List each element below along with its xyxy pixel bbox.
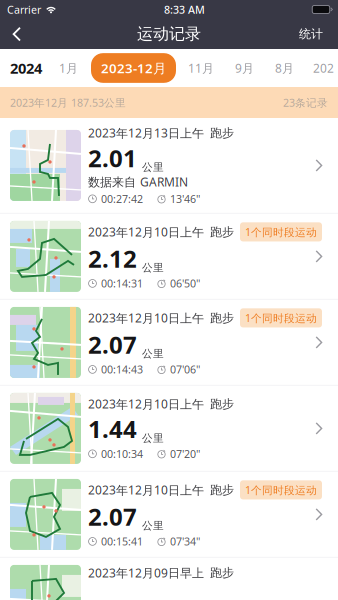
- staticText: 跑步: [210, 396, 234, 411]
- staticText: 运动记录: [137, 24, 201, 44]
- staticText: 00:14:43: [101, 362, 143, 376]
- button[interactable]: 1月: [59, 60, 78, 76]
- button[interactable]: 2023年12月13日上午: [0, 118, 338, 213]
- staticText: 1个同时段运动: [245, 483, 317, 497]
- button[interactable]: 11月: [188, 60, 214, 76]
- button[interactable]: 2023年12月09日早上: [0, 558, 338, 600]
- staticText: 跑步: [210, 224, 234, 239]
- staticText: 00:15:41: [101, 534, 143, 548]
- staticText: 00:27:42: [101, 192, 143, 206]
- staticText: 07'20'': [170, 447, 200, 461]
- button[interactable]: 2023年12月10日上午: [0, 300, 338, 385]
- staticText: 11月: [188, 60, 214, 76]
- staticText: 跑步: [210, 565, 234, 580]
- staticText: 2023年12月09日早上: [88, 565, 204, 581]
- staticText: Carrier: [7, 2, 41, 17]
- staticText: 公里: [142, 347, 164, 360]
- staticText: 8:33 AM: [164, 2, 205, 17]
- staticText: 2.07: [88, 328, 137, 360]
- staticText: 07'06'': [170, 362, 200, 376]
- staticText: 公里: [142, 519, 164, 532]
- staticText: 2023年12月10日上午: [88, 224, 204, 240]
- button[interactable]: 2023年12月10日上午: [0, 214, 338, 299]
- staticText: 2023年12月10日上午: [88, 396, 204, 412]
- staticText: 2024: [10, 58, 42, 78]
- button[interactable]: 2023-12月: [91, 53, 176, 83]
- staticText: 跑步: [210, 310, 234, 325]
- staticText: 1个同时段运动: [245, 225, 317, 239]
- staticText: 2.12: [88, 242, 137, 274]
- button[interactable]: 9月: [235, 60, 254, 76]
- staticText: 00:10:34: [101, 447, 143, 461]
- staticText: 2023年12月13日上午: [88, 125, 204, 141]
- staticText: 跑步: [210, 482, 234, 497]
- staticText: 1个同时段运动: [245, 311, 317, 325]
- button[interactable]: 2023年12月10日上午: [0, 386, 338, 471]
- button[interactable]: 2023年12月10日上午: [0, 472, 338, 557]
- staticText: 8月: [275, 60, 294, 76]
- staticText: 2023年12月10日上午: [88, 310, 204, 326]
- staticText: 2023-12月: [101, 59, 166, 77]
- staticText: 2.07: [88, 500, 137, 532]
- staticText: 2023年12月 187.53公里: [10, 95, 126, 110]
- staticText: 1.44: [88, 413, 137, 445]
- staticText: 跑步: [210, 126, 234, 140]
- button[interactable]: 202: [313, 60, 334, 76]
- staticText: 23条记录: [283, 95, 328, 110]
- staticText: 数据来自 GARMIN: [88, 174, 188, 190]
- staticText: 公里: [142, 161, 164, 174]
- staticText: 06'50'': [170, 276, 200, 290]
- staticText: 公里: [142, 432, 164, 445]
- button[interactable]: 8月: [275, 60, 294, 76]
- staticText: 公里: [142, 261, 164, 274]
- button[interactable]: 返回: [0, 19, 32, 49]
- staticText: 07'34'': [170, 534, 200, 548]
- staticText: 统计: [299, 27, 323, 41]
- staticText: 2.01: [88, 142, 137, 174]
- staticText: 9月: [235, 60, 254, 76]
- button[interactable]: 统计: [289, 19, 338, 49]
- staticText: 1月: [59, 60, 78, 76]
- staticText: 13'46'': [170, 192, 200, 206]
- staticText: 202: [313, 60, 334, 76]
- staticText: 2023年12月10日上午: [88, 482, 204, 498]
- staticText: 00:14:31: [101, 276, 143, 290]
